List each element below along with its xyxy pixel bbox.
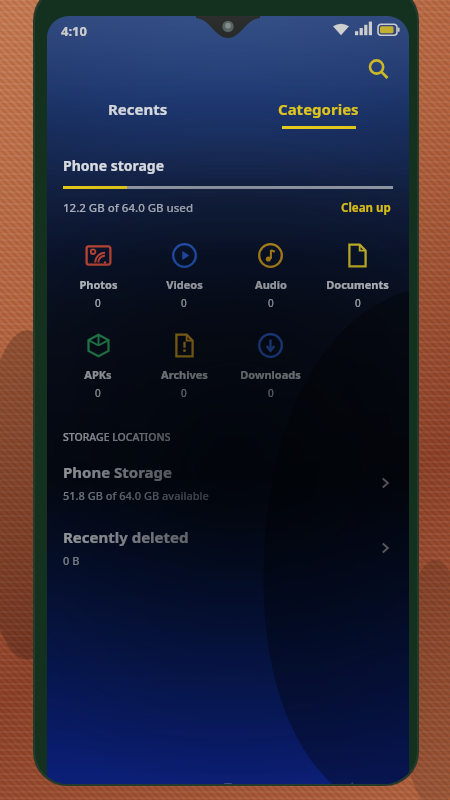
staticText: 0 bbox=[268, 296, 274, 310]
staticText: APKs bbox=[84, 367, 112, 382]
button[interactable]: Recents bbox=[47, 92, 228, 136]
button[interactable]: Clean up bbox=[339, 198, 393, 218]
staticText: 12.2 GB of 64.0 GB used bbox=[63, 200, 194, 216]
staticText: Audio bbox=[255, 277, 287, 292]
staticText: Archives bbox=[161, 367, 208, 382]
button[interactable]: Photos bbox=[55, 238, 141, 314]
button[interactable]: Phone Storage bbox=[47, 454, 409, 511]
button[interactable]: Documents bbox=[314, 238, 401, 314]
staticText: Photos bbox=[79, 277, 118, 292]
staticText: 0 bbox=[268, 386, 274, 400]
staticText: 0 bbox=[181, 386, 187, 400]
staticText: Phone storage bbox=[63, 156, 165, 175]
staticText: Clean up bbox=[341, 200, 391, 216]
button[interactable]: Recently deleted bbox=[47, 519, 409, 576]
staticText: Recents bbox=[108, 99, 168, 119]
button[interactable]: Downloads bbox=[227, 328, 314, 404]
staticText: Downloads bbox=[240, 367, 301, 382]
staticText: 4:10 bbox=[61, 22, 87, 40]
button[interactable]: Back bbox=[288, 766, 409, 784]
staticText: Documents bbox=[326, 277, 389, 292]
staticText: 0 bbox=[181, 296, 187, 310]
staticText: 51.8 GB of 64.0 GB available bbox=[63, 488, 209, 503]
button[interactable]: Audio bbox=[227, 238, 314, 314]
button[interactable]: Recent apps bbox=[47, 766, 167, 784]
staticText: Videos bbox=[166, 277, 203, 292]
button[interactable]: Categories bbox=[228, 92, 409, 136]
button[interactable]: Search bbox=[359, 50, 397, 88]
staticText: 0 bbox=[95, 296, 101, 310]
button[interactable]: Home bbox=[167, 766, 288, 784]
staticText: 0 bbox=[95, 386, 101, 400]
staticText: Recently deleted bbox=[63, 527, 189, 547]
staticText: STORAGE LOCATIONS bbox=[63, 430, 171, 444]
button[interactable]: APKs bbox=[55, 328, 141, 404]
staticText: 0 B bbox=[63, 553, 80, 568]
staticText: Phone Storage bbox=[63, 462, 173, 482]
staticText: 0 bbox=[355, 296, 361, 310]
button[interactable]: Archives bbox=[141, 328, 227, 404]
staticText: Categories bbox=[278, 99, 359, 119]
button[interactable]: Videos bbox=[141, 238, 227, 314]
